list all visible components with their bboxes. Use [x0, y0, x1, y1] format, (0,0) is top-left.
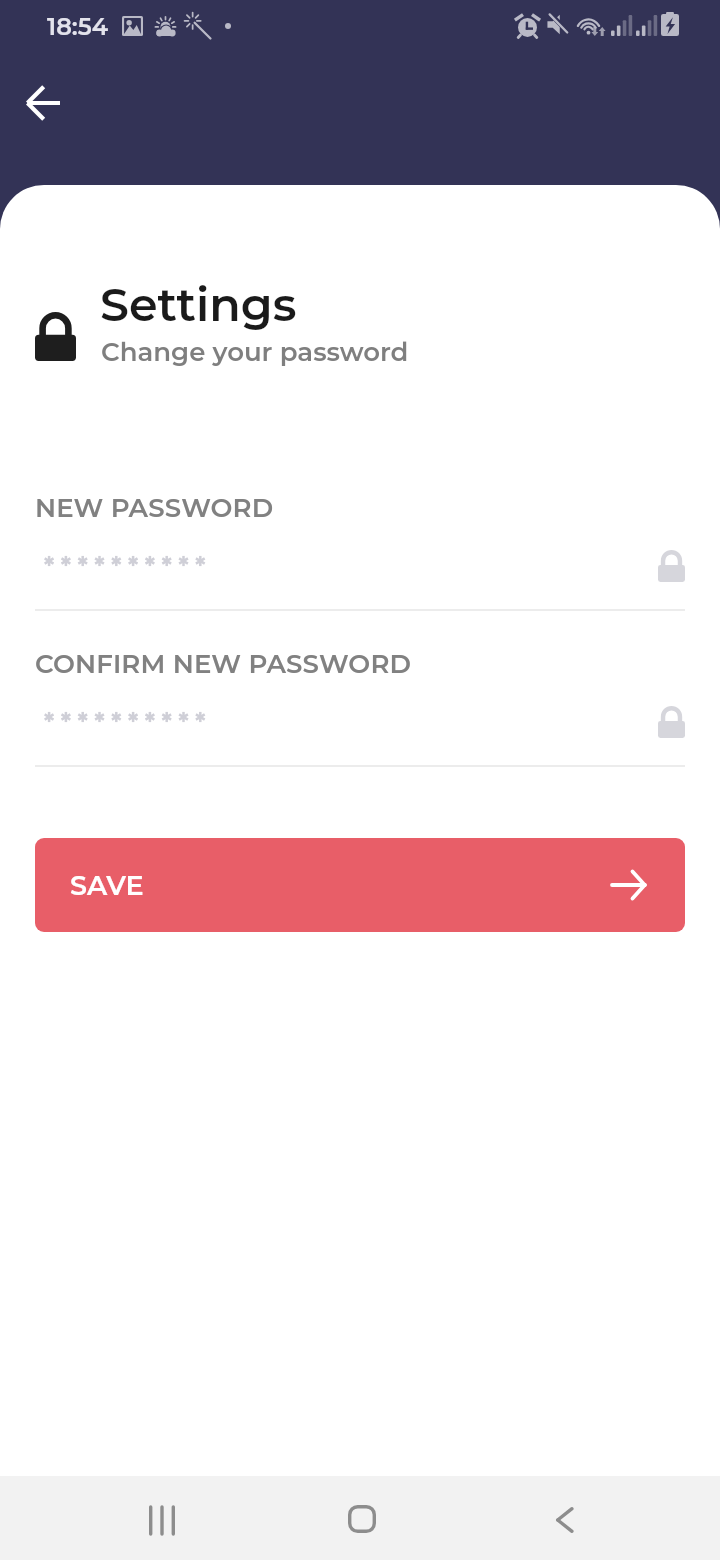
staticText: CONFIRM NEW PASSWORD	[35, 648, 412, 680]
staticText: Settings	[100, 276, 297, 332]
button[interactable]: Home	[322, 1479, 402, 1559]
button[interactable]	[35, 534, 685, 590]
button[interactable]: Back	[524, 1480, 604, 1560]
button[interactable]: Back	[8, 68, 76, 136]
staticText: NEW PASSWORD	[35, 492, 274, 524]
staticText: Change your password	[101, 336, 409, 368]
staticText: SAVE	[70, 869, 144, 902]
button[interactable]: Recents	[122, 1480, 202, 1560]
button[interactable]: SAVE	[35, 838, 685, 932]
staticText: 18:54	[47, 12, 108, 41]
button[interactable]	[35, 690, 685, 746]
